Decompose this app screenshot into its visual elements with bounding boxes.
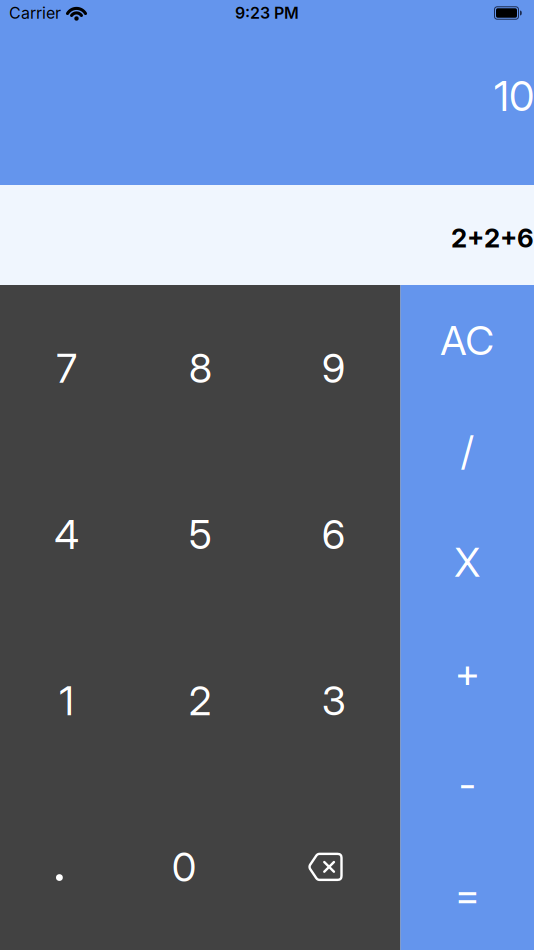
button[interactable]: 9	[267, 285, 400, 451]
staticText: +	[455, 649, 480, 697]
button[interactable]: 4	[0, 451, 133, 617]
staticText: /	[461, 427, 474, 475]
staticText: AC	[440, 316, 494, 365]
staticText: X	[454, 538, 480, 586]
button[interactable]: Decimal point	[0, 784, 133, 950]
staticText: 9	[322, 344, 346, 392]
staticText: 6	[322, 510, 346, 559]
staticText: Carrier	[9, 3, 61, 23]
button[interactable]: -	[400, 728, 534, 839]
button[interactable]: /	[400, 396, 534, 507]
staticText: 2	[189, 676, 212, 725]
button[interactable]: +	[400, 617, 534, 728]
staticText: 2+2+6	[451, 222, 534, 254]
staticText: 10	[494, 71, 534, 121]
staticText: 7	[56, 344, 77, 392]
staticText: =	[455, 870, 480, 919]
button[interactable]: 5	[133, 451, 267, 617]
staticText: 1	[59, 676, 74, 725]
staticText: 4	[54, 510, 79, 559]
button[interactable]: 7	[0, 285, 133, 451]
button[interactable]: 8	[133, 285, 267, 451]
button[interactable]: 1	[0, 617, 133, 784]
button[interactable]: 0	[133, 784, 267, 950]
staticText: 0	[172, 843, 197, 891]
button[interactable]: =	[400, 839, 534, 950]
staticText: 9:23 PM	[235, 3, 299, 23]
staticText: 8	[189, 344, 212, 392]
button[interactable]: 3	[267, 617, 400, 784]
staticText: -	[459, 760, 476, 808]
button[interactable]: 2	[133, 617, 267, 784]
button[interactable]: Backspace	[267, 784, 400, 950]
staticText: 5	[189, 510, 212, 559]
button[interactable]: AC	[400, 285, 534, 396]
staticText: 3	[322, 676, 346, 725]
button[interactable]: 6	[267, 451, 400, 617]
button[interactable]: X	[400, 507, 534, 617]
